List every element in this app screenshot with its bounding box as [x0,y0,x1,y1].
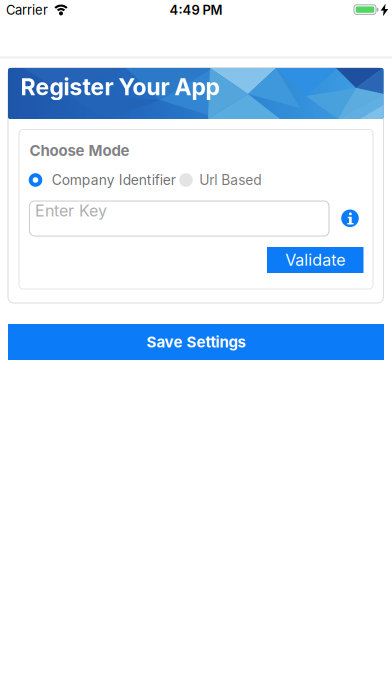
staticText: Save Settings [146,333,245,351]
button[interactable]: Save Settings [8,324,384,360]
button[interactable]: Company Identifier [29,169,229,191]
button[interactable]: Url Based [179,169,289,191]
staticText: Url Based [199,172,261,188]
staticText: 4:49 PM [169,2,222,18]
staticText: Choose Mode [29,141,129,159]
staticText: Validate [285,250,345,270]
button[interactable]: Validate [267,247,363,273]
staticText: Register Your App [20,73,219,101]
staticText: Carrier [6,2,48,18]
staticText: Enter Key [35,201,107,220]
button[interactable]: Info [341,209,359,227]
staticText: Company Identifier [52,172,176,188]
